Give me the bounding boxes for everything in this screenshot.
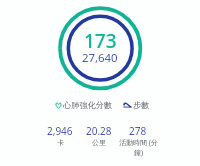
staticText: 活動時間 (分 鐘) — [119, 138, 158, 157]
button[interactable]: 2,946 — [40, 124, 80, 147]
button[interactable]: 心肺強化分數 — [55, 100, 113, 110]
staticText: 278 — [129, 124, 147, 138]
staticText: 步數 — [133, 100, 150, 110]
staticText: 27,640 — [82, 50, 118, 66]
staticText: 173 — [84, 28, 117, 54]
staticText: 卡 — [57, 138, 64, 147]
button[interactable]: 20.28 — [79, 124, 119, 147]
staticText: 2,946 — [47, 124, 73, 138]
staticText: 20.28 — [86, 124, 112, 138]
staticText: 心肺強化分數 — [63, 100, 113, 110]
button[interactable]: 278 — [116, 124, 160, 157]
button[interactable]: 步數 — [123, 100, 150, 110]
staticText: 公里 — [92, 138, 106, 147]
